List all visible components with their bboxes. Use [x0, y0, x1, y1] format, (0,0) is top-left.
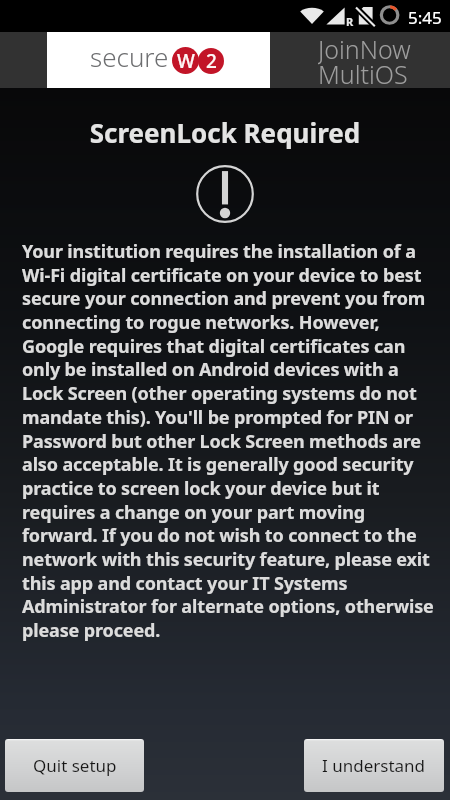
staticText: secure: [90, 39, 169, 74]
staticText: ScreenLock Required: [0, 115, 450, 150]
staticText: I understand: [322, 754, 426, 777]
staticText: only be installed on Android devices wit…: [22, 357, 399, 382]
staticText: also acceptable. It is generally good se…: [22, 452, 414, 477]
staticText: Your institution requires the installati…: [22, 239, 416, 264]
staticText: 2: [206, 48, 217, 74]
staticText: R: [346, 14, 354, 29]
staticText: Wi-Fi digital certificate on your device…: [22, 263, 422, 288]
staticText: Quit setup: [33, 754, 117, 777]
staticText: W: [177, 48, 195, 74]
staticText: secure your connection and prevent you f…: [22, 286, 426, 311]
staticText: 5:45: [408, 6, 442, 29]
staticText: Google requires that digital certificate…: [22, 334, 406, 359]
staticText: JoinNow MultiOS: [318, 32, 411, 88]
staticText: Password but other Lock Screen methods a…: [22, 429, 421, 454]
staticText: practice to screen lock your device but …: [22, 476, 380, 501]
button[interactable]: I understand: [304, 739, 444, 792]
button[interactable]: Quit setup: [5, 739, 144, 792]
staticText: mandate this). You'll be prompted for PI…: [22, 405, 413, 430]
staticText: connecting to rogue networks. However,: [22, 310, 380, 335]
staticText: this app and contact your IT Systems: [22, 571, 348, 596]
staticText: Lock Screen (other operating systems do …: [22, 381, 417, 406]
staticText: please proceed.: [22, 618, 161, 643]
staticText: network with this security feature, plea…: [22, 547, 430, 572]
staticText: requires a change on your part moving: [22, 500, 366, 525]
staticText: forward. If you do not wish to connect t…: [22, 523, 417, 548]
staticText: Administrator for alternate options, oth…: [22, 594, 434, 619]
